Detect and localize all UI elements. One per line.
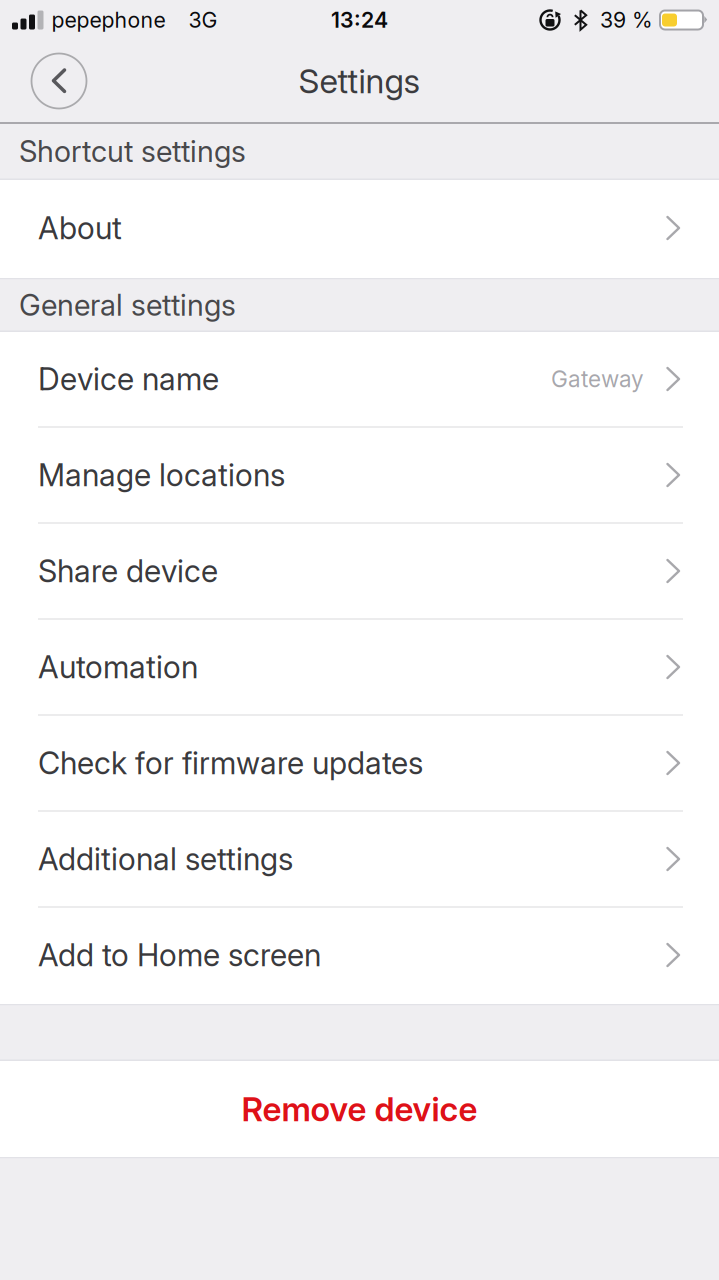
staticText: Add to Home screen bbox=[38, 937, 321, 973]
button[interactable]: Share device bbox=[0, 524, 719, 620]
staticText: Settings bbox=[298, 61, 420, 101]
staticText: Share device bbox=[38, 553, 218, 589]
staticText: Remove device bbox=[241, 1089, 477, 1129]
button[interactable]: Check for firmware updates bbox=[0, 716, 719, 812]
button[interactable]: Add to Home screen bbox=[0, 908, 719, 1004]
staticText: pepephone bbox=[51, 7, 165, 33]
staticText: Additional settings bbox=[38, 841, 293, 877]
staticText: Manage locations bbox=[38, 457, 285, 493]
staticText: Shortcut settings bbox=[19, 134, 246, 168]
staticText: Check for firmware updates bbox=[38, 745, 423, 781]
button[interactable]: About bbox=[0, 180, 719, 278]
button[interactable]: Remove device bbox=[0, 1061, 719, 1157]
staticText: 13:24 bbox=[331, 7, 388, 33]
button[interactable]: Manage locations bbox=[0, 428, 719, 524]
button[interactable]: Automation bbox=[0, 620, 719, 716]
staticText: General settings bbox=[19, 288, 236, 322]
staticText: About bbox=[38, 210, 122, 246]
button[interactable]: Additional settings bbox=[0, 812, 719, 908]
staticText: 3G bbox=[188, 7, 217, 33]
staticText: Automation bbox=[38, 649, 198, 685]
button[interactable]: Device name bbox=[0, 332, 719, 428]
button[interactable]: Back bbox=[31, 53, 87, 109]
staticText: Gateway bbox=[551, 366, 644, 392]
staticText: 39 % bbox=[600, 7, 653, 33]
staticText: Device name bbox=[38, 361, 219, 397]
